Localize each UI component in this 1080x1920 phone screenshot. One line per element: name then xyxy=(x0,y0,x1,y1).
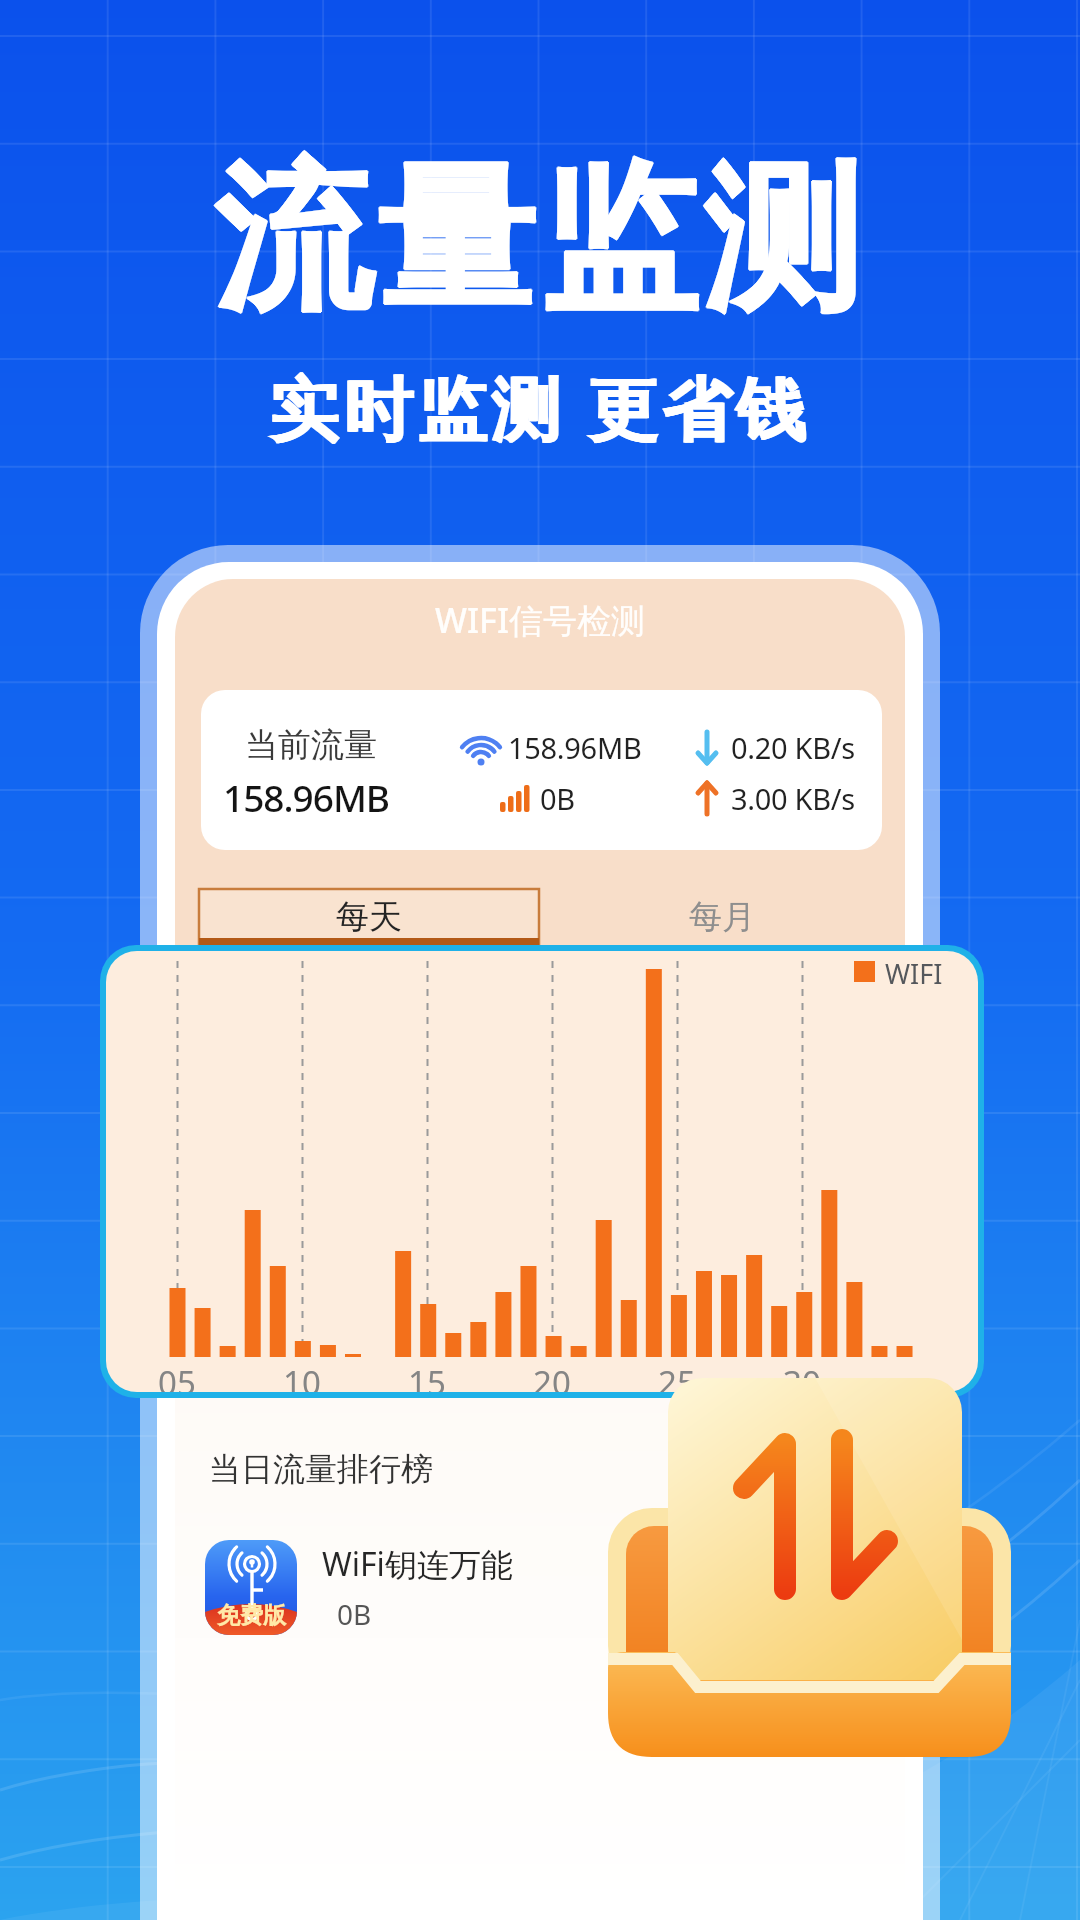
staticText: 10 xyxy=(283,1360,321,1392)
staticText: 0B xyxy=(540,779,575,818)
button[interactable]: WiFi钥连万能 xyxy=(195,1529,695,1639)
staticText: 流量监测 xyxy=(0,141,1079,340)
staticText: 3.00 KB/s xyxy=(731,779,855,818)
staticText: 流量监测 xyxy=(0,140,1080,339)
staticText: 实时监测 更省钱 xyxy=(1,360,1080,454)
staticText: 20 xyxy=(533,1360,571,1392)
staticText: 15 xyxy=(408,1360,446,1392)
staticText: WIFI信号检测 xyxy=(175,597,905,643)
staticText: 实时监测 更省钱 xyxy=(0,360,1080,454)
staticText: 158.96MB xyxy=(508,728,642,767)
staticText: 当前流量 xyxy=(245,724,377,766)
staticText: 每天 xyxy=(336,896,402,938)
staticText: 25 xyxy=(658,1360,696,1392)
button[interactable]: 免费版 xyxy=(205,1540,297,1635)
staticText: 每月 xyxy=(689,896,755,938)
staticText: 流量监测 xyxy=(1,141,1080,340)
staticText: 0B xyxy=(337,1595,372,1633)
staticText: 当日流量排行榜 xyxy=(209,1449,433,1489)
staticText: 0.20 KB/s xyxy=(731,728,855,767)
staticText: 实时监测 更省钱 xyxy=(0,360,1079,454)
staticText: WIFI xyxy=(885,955,943,992)
staticText: 流量监测 xyxy=(0,141,1080,340)
button[interactable]: 每月 xyxy=(539,889,905,945)
button[interactable]: 每天 xyxy=(199,889,539,945)
staticText: 05 xyxy=(158,1360,196,1392)
staticText: 流量监测 xyxy=(0,142,1080,341)
staticText: 免费版 xyxy=(217,1601,286,1630)
button[interactable]: 当前流量 xyxy=(201,690,882,850)
staticText: WiFi钥连万能 xyxy=(322,1542,513,1586)
staticText: 30 xyxy=(783,1360,821,1392)
staticText: 158.96MB xyxy=(223,772,390,822)
